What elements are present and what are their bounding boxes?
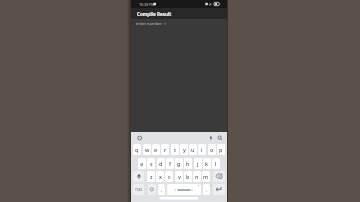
button[interactable]: m: [202, 171, 210, 182]
button[interactable]: x: [156, 171, 164, 182]
staticText: r: [164, 146, 167, 153]
button[interactable]: g: [175, 158, 183, 169]
button[interactable]: f: [166, 158, 174, 169]
button[interactable]: w: [143, 144, 151, 155]
button[interactable]: v: [175, 171, 183, 182]
button[interactable]: u: [189, 144, 197, 155]
button[interactable]: y: [180, 144, 188, 155]
button[interactable]: ?123: [133, 184, 144, 195]
button[interactable]: t: [171, 144, 179, 155]
button[interactable]: k: [203, 158, 211, 169]
button[interactable]: Compile Result: [131, 8, 227, 19]
staticText: y: [183, 146, 186, 153]
button[interactable]: [213, 171, 225, 182]
staticText: Compile Result: [137, 11, 172, 17]
button[interactable]: s: [147, 158, 155, 169]
button[interactable]: e: [152, 144, 160, 155]
button[interactable]: [213, 184, 225, 195]
staticText: q: [135, 146, 139, 153]
button[interactable]: z: [147, 171, 155, 182]
button[interactable]: b: [184, 171, 192, 182]
button[interactable]: r: [161, 144, 169, 155]
staticText: v: [178, 173, 181, 180]
button[interactable]: q: [133, 144, 141, 155]
button[interactable]: l: [212, 158, 220, 169]
button[interactable]: h: [184, 158, 192, 169]
staticText: g: [177, 160, 181, 167]
staticText: d: [159, 160, 163, 167]
staticText: e: [154, 146, 158, 153]
staticText: u: [191, 146, 195, 153]
button[interactable]: c: [165, 171, 173, 182]
staticText: c: [168, 173, 171, 180]
staticText: p: [219, 146, 223, 153]
staticText: l: [215, 160, 217, 167]
button[interactable]: p: [217, 144, 225, 155]
button[interactable]: j: [194, 158, 202, 169]
staticText: i: [201, 146, 203, 153]
staticText: a: [140, 160, 144, 167]
button[interactable]: [133, 171, 144, 182]
staticText: m: [203, 173, 209, 180]
staticText: 10:38 PM: [139, 2, 155, 7]
staticText: ?123: [135, 188, 142, 192]
staticText: f: [169, 160, 171, 167]
staticText: s: [150, 160, 153, 167]
button[interactable]: i: [198, 144, 206, 155]
button[interactable]: a: [138, 158, 146, 169]
staticText: enter number >: [136, 21, 167, 26]
staticText: h: [186, 160, 190, 167]
staticText: w: [145, 146, 150, 153]
button[interactable]: o: [208, 144, 216, 155]
button[interactable]: .: [203, 184, 210, 195]
staticText: n: [195, 173, 199, 180]
staticText: x: [159, 173, 162, 180]
staticText: o: [210, 146, 214, 153]
staticText: ,: [161, 187, 163, 193]
staticText: j: [197, 160, 199, 167]
staticText: z: [150, 173, 153, 180]
staticText: k: [205, 160, 209, 167]
button[interactable]: [167, 184, 201, 195]
staticText: b: [186, 173, 190, 180]
staticText: .: [206, 187, 208, 193]
button[interactable]: n: [193, 171, 201, 182]
staticText: t: [174, 146, 177, 153]
button[interactable]: d: [157, 158, 165, 169]
button[interactable]: ,: [158, 184, 165, 195]
button[interactable]: [148, 184, 156, 195]
